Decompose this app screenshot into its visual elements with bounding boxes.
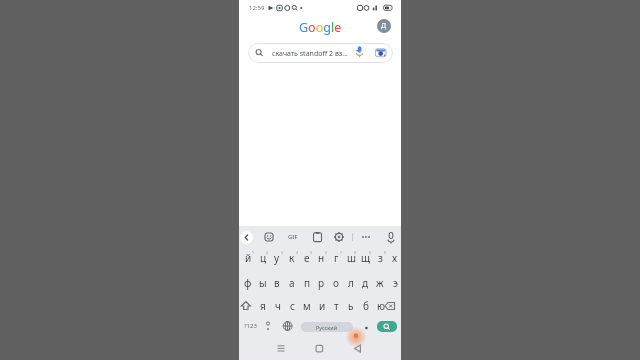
- staticText: а: [289, 276, 295, 290]
- button[interactable]: г: [326, 250, 346, 266]
- button[interactable]: ш: [341, 250, 361, 266]
- staticText: н: [318, 251, 325, 265]
- button[interactable]: щ: [355, 250, 375, 266]
- staticText: ы: [259, 276, 267, 290]
- staticText: с: [290, 299, 295, 313]
- button[interactable]: ю: [371, 298, 391, 314]
- staticText: к: [289, 251, 295, 265]
- button[interactable]: я: [253, 298, 273, 314]
- staticText: ?123: [244, 322, 257, 330]
- staticText: 6: [325, 250, 328, 255]
- staticText: 4: [296, 250, 299, 255]
- staticText: 5: [310, 250, 313, 255]
- button[interactable]: а: [282, 275, 302, 291]
- staticText: ж: [376, 276, 384, 290]
- button[interactable]: в: [267, 275, 287, 291]
- button[interactable]: скачать standoff 2 вз...: [248, 43, 393, 63]
- button[interactable]: и: [312, 298, 332, 314]
- button[interactable]: [377, 321, 397, 332]
- staticText: 8: [354, 250, 357, 255]
- staticText: о: [333, 276, 339, 290]
- button[interactable]: ы: [253, 275, 273, 291]
- staticText: ь: [348, 299, 354, 313]
- staticText: х: [392, 251, 398, 265]
- staticText: у: [274, 251, 280, 265]
- button[interactable]: ж: [370, 275, 390, 291]
- staticText: 9: [369, 250, 372, 255]
- staticText: я: [260, 299, 266, 313]
- button[interactable]: б: [356, 298, 376, 314]
- staticText: 1: [252, 250, 255, 255]
- button[interactable]: ь: [341, 298, 361, 314]
- staticText: б: [363, 299, 369, 313]
- staticText: и: [319, 299, 326, 313]
- staticText: е: [304, 251, 310, 265]
- button[interactable]: Д: [377, 19, 391, 33]
- button[interactable]: т: [326, 298, 346, 314]
- staticText: р: [318, 276, 325, 290]
- button[interactable]: ?123: [240, 318, 260, 334]
- button[interactable]: ч: [268, 298, 288, 314]
- button[interactable]: п: [297, 275, 317, 291]
- staticText: э: [393, 276, 398, 290]
- staticText: ш: [347, 251, 356, 265]
- button[interactable]: с: [282, 298, 302, 314]
- button[interactable]: у: [267, 250, 287, 266]
- staticText: м: [303, 299, 311, 313]
- staticText: 0: [384, 250, 387, 255]
- button[interactable]: к: [282, 250, 302, 266]
- button[interactable]: э: [385, 275, 405, 291]
- button[interactable]: [240, 231, 253, 244]
- button[interactable]: ф: [238, 275, 258, 291]
- staticText: ц: [260, 251, 267, 265]
- button[interactable]: н: [311, 250, 331, 266]
- staticText: Д: [381, 21, 387, 31]
- staticText: г: [334, 251, 339, 265]
- button[interactable]: й: [238, 250, 258, 266]
- button[interactable]: д: [355, 275, 375, 291]
- staticText: п: [304, 276, 311, 290]
- staticText: ф: [244, 276, 252, 290]
- staticText: д: [362, 276, 369, 290]
- button[interactable]: з: [370, 250, 390, 266]
- staticText: ю: [377, 299, 385, 313]
- staticText: л: [348, 276, 354, 290]
- staticText: з: [378, 251, 383, 265]
- button[interactable]: ц: [253, 250, 273, 266]
- staticText: скачать standoff 2 вз...: [272, 49, 348, 59]
- button[interactable]: р: [311, 275, 331, 291]
- button[interactable]: Русский: [301, 322, 353, 332]
- staticText: 2: [266, 250, 269, 255]
- staticText: Русский: [316, 324, 338, 331]
- staticText: щ: [361, 251, 370, 265]
- staticText: 7: [340, 250, 343, 255]
- staticText: 12:59: [249, 4, 265, 12]
- staticText: й: [245, 251, 252, 265]
- staticText: т: [334, 299, 339, 313]
- button[interactable]: л: [341, 275, 361, 291]
- staticText: ч: [275, 299, 281, 313]
- button[interactable]: е: [297, 250, 317, 266]
- staticText: в: [274, 276, 280, 290]
- button[interactable]: х: [385, 250, 405, 266]
- staticText: 3: [281, 250, 284, 255]
- staticText: GIF: [288, 233, 298, 241]
- staticText: Google: [299, 19, 342, 36]
- button[interactable]: о: [326, 275, 346, 291]
- button[interactable]: м: [297, 298, 317, 314]
